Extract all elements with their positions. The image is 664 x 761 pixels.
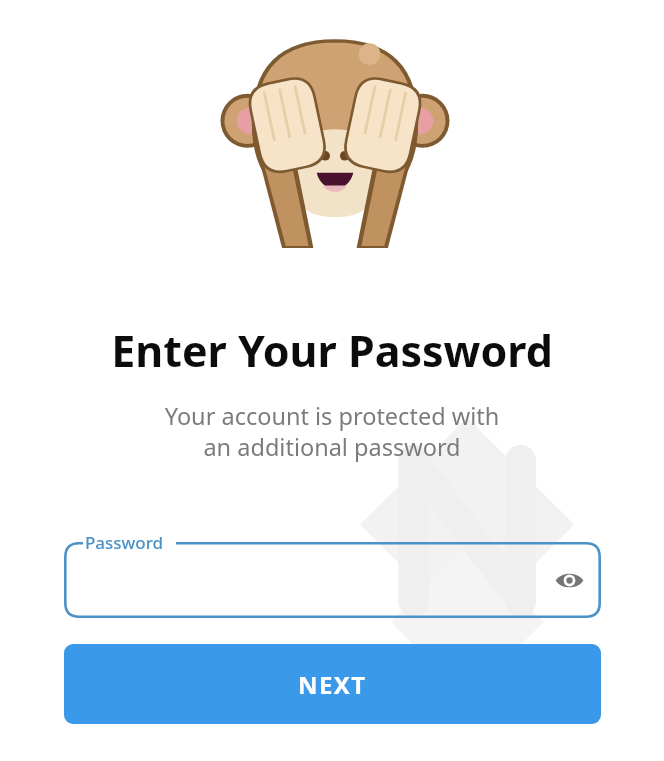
staticText: Enter Your Password (0, 321, 664, 380)
button[interactable]: Password (64, 542, 601, 618)
staticText: Your account is protected with an additi… (0, 400, 664, 462)
staticText: Password (85, 531, 164, 554)
staticText: NEXT (298, 668, 367, 701)
button[interactable]: Show password (547, 558, 591, 602)
button[interactable]: NEXT (64, 644, 601, 724)
